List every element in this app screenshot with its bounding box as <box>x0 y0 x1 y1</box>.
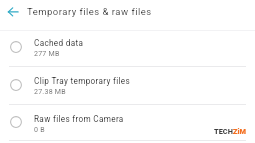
staticText: Raw files from Camera <box>34 114 124 124</box>
button[interactable]: Clip Tray temporary files <box>0 67 255 104</box>
staticText: TECH <box>214 127 233 136</box>
staticText: Temporary files & raw files <box>27 6 152 17</box>
staticText: 0 B <box>34 125 45 133</box>
button[interactable]: Raw files from Camera <box>0 104 255 141</box>
staticText: ZiM <box>233 127 247 136</box>
staticText: Cached data <box>34 38 84 48</box>
staticText: Clip Tray temporary files <box>34 76 130 86</box>
staticText: 27.38 MB <box>34 87 66 95</box>
staticText: 277 MB <box>34 49 60 57</box>
button[interactable]: Cached data <box>0 29 255 66</box>
button[interactable]: Navigate up <box>2 2 26 26</box>
